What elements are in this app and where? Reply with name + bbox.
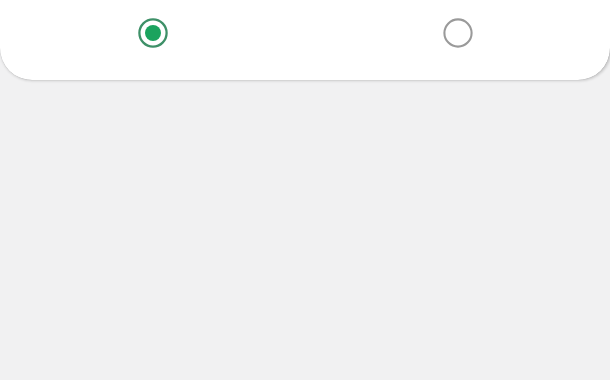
button[interactable] (305, 0, 610, 80)
button[interactable] (0, 0, 305, 80)
